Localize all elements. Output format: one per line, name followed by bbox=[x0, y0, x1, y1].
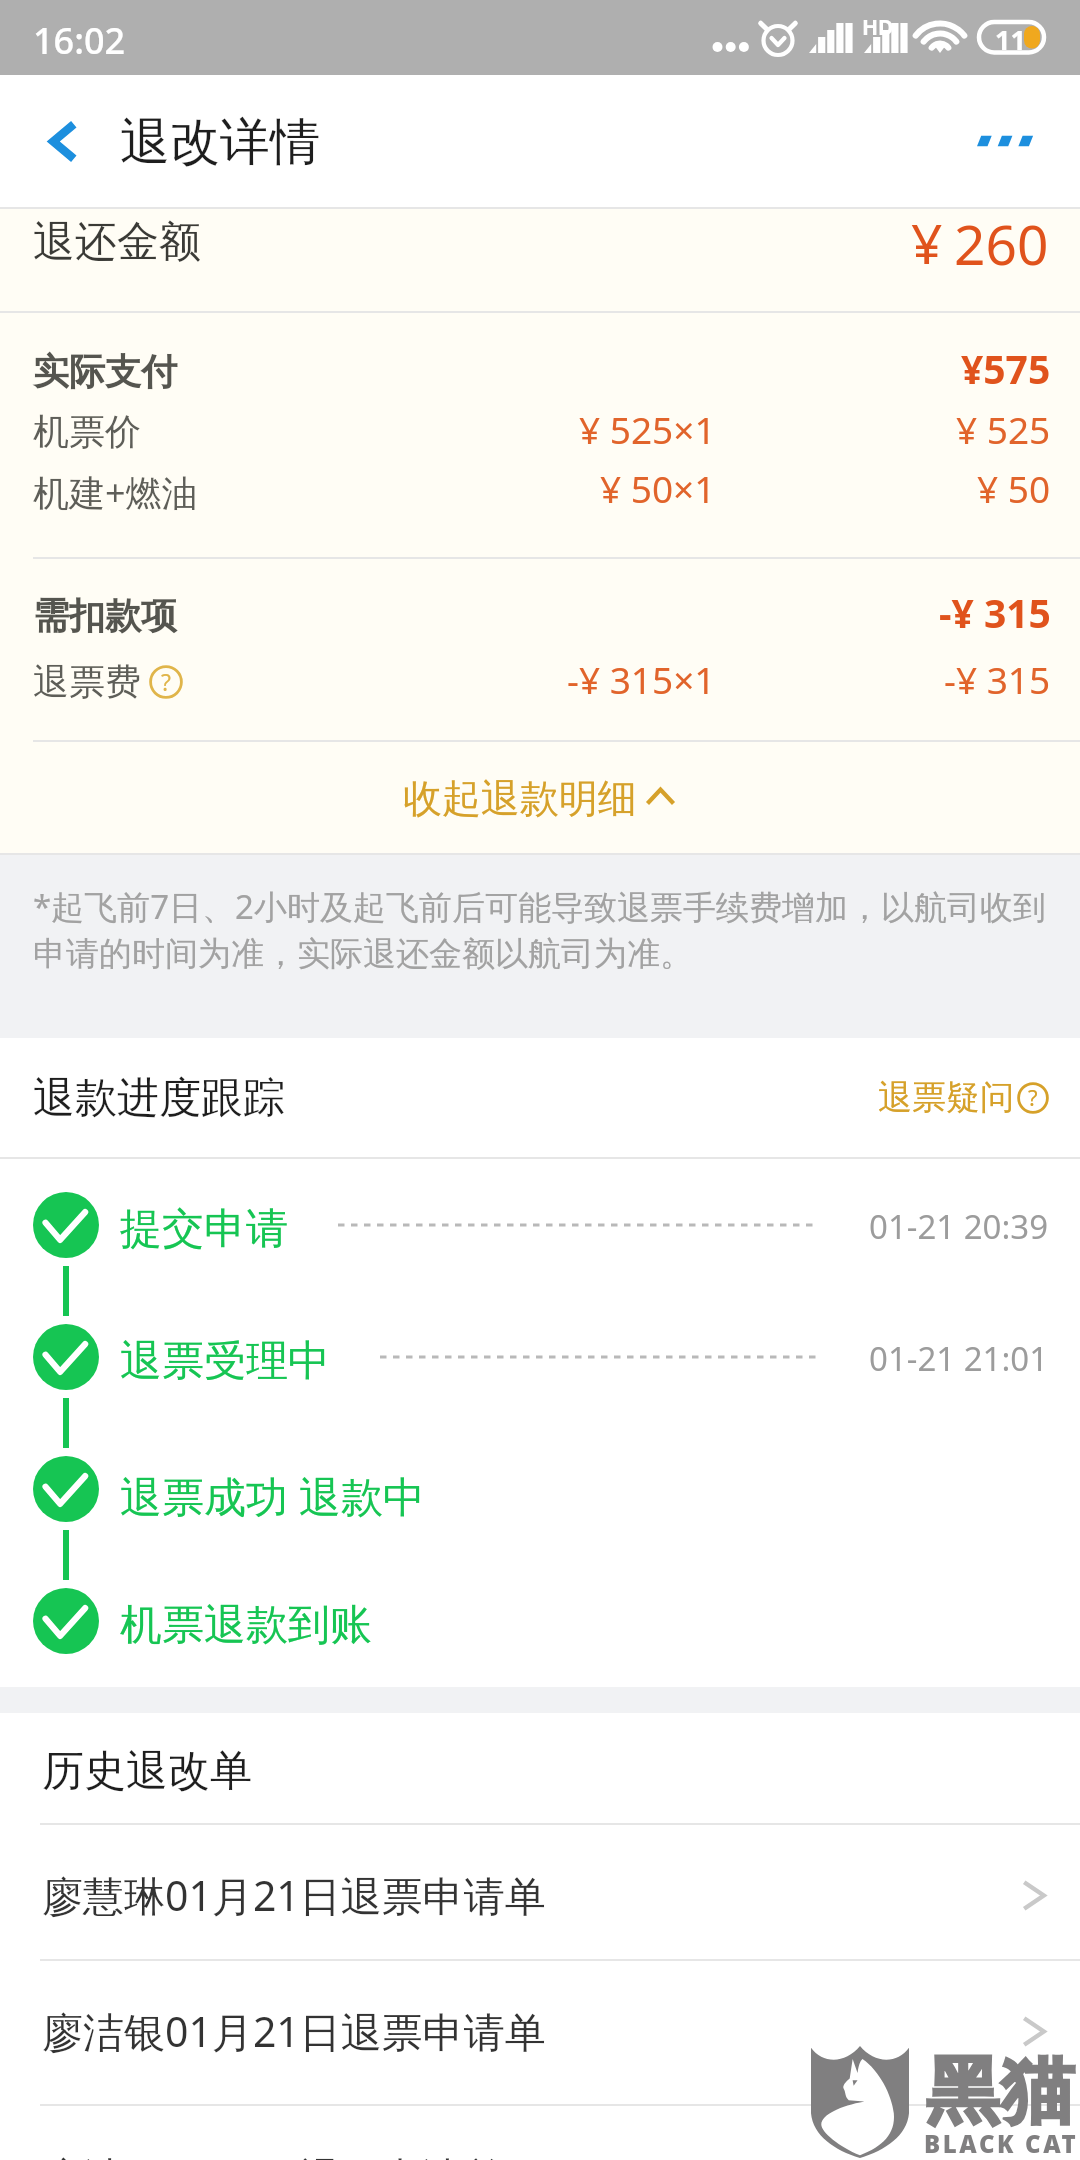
staticText: 廖洁银01月21日退票申请单 bbox=[42, 2003, 546, 2059]
staticText: -¥ 315 bbox=[944, 654, 1051, 704]
staticText: ¥ 525 bbox=[956, 404, 1051, 454]
staticText: 退票疑问 bbox=[878, 1076, 1014, 1119]
staticText: 实际支付 bbox=[33, 349, 177, 394]
staticText: 退票受理中 bbox=[120, 1335, 330, 1388]
staticText: 260 bbox=[954, 206, 1049, 281]
staticText: 机票退款到账 bbox=[120, 1599, 372, 1652]
staticText: 退票费 bbox=[33, 659, 141, 704]
staticText: 提交申请 bbox=[120, 1203, 288, 1256]
staticText: 历史退改单 bbox=[42, 1745, 252, 1798]
staticText: ¥ 50×1 bbox=[600, 463, 716, 513]
staticText: ? bbox=[1028, 1082, 1038, 1112]
staticText: HD bbox=[862, 13, 894, 42]
staticText: *起飞前7日、2小时及起飞前后可能导致退票手续费增加，以航司收到 bbox=[33, 884, 1046, 929]
staticText: ¥ 50 bbox=[977, 463, 1051, 513]
staticText: ¥575 bbox=[961, 342, 1051, 395]
staticText: 01-21 20:39 bbox=[869, 1204, 1049, 1249]
staticText: -¥ 315 bbox=[939, 586, 1051, 639]
staticText: 退票成功 退款中 bbox=[120, 1467, 425, 1524]
staticText: 廖慧琳01月21日退票申请单 bbox=[42, 1867, 546, 1923]
staticText: 机票价 bbox=[33, 409, 141, 454]
button[interactable]: More options bbox=[958, 111, 1058, 171]
staticText: 11 bbox=[995, 21, 1026, 58]
staticText: 廖洁01月21日退票申请单 bbox=[42, 2148, 505, 2160]
button[interactable]: 廖慧琳01月21日退票申请单 bbox=[0, 1825, 1080, 1959]
staticText: ¥ 525×1 bbox=[579, 404, 716, 454]
button[interactable]: Back bbox=[14, 93, 110, 189]
staticText: BLACK CAT bbox=[924, 2127, 1079, 2160]
button[interactable]: 廖洁银01月21日退票申请单 bbox=[0, 1961, 1080, 2095]
staticText: ? bbox=[161, 666, 171, 697]
staticText: ¥ bbox=[911, 205, 943, 280]
staticText: 需扣款项 bbox=[33, 593, 177, 638]
staticText: 16:02 bbox=[33, 16, 126, 65]
staticText: 申请的时间为准，实际退还金额以航司为准。 bbox=[33, 933, 693, 975]
staticText: 黑猫 bbox=[925, 2046, 1075, 2138]
button[interactable]: 收起退款明细 bbox=[0, 743, 1080, 853]
staticText: 01-21 21:01 bbox=[869, 1336, 1049, 1381]
staticText: 收起退款明细 bbox=[403, 774, 637, 823]
staticText: 退款进度跟踪 bbox=[33, 1072, 285, 1125]
staticText: 退还金额 bbox=[33, 216, 201, 269]
staticText: 退改详情 bbox=[120, 111, 320, 174]
button[interactable]: 退票疑问 bbox=[878, 1076, 1049, 1119]
staticText: -¥ 315×1 bbox=[567, 654, 716, 704]
button[interactable]: 廖洁01月21日退票申请单 bbox=[0, 2106, 1080, 2160]
staticText: 机建+燃油 bbox=[33, 468, 198, 517]
